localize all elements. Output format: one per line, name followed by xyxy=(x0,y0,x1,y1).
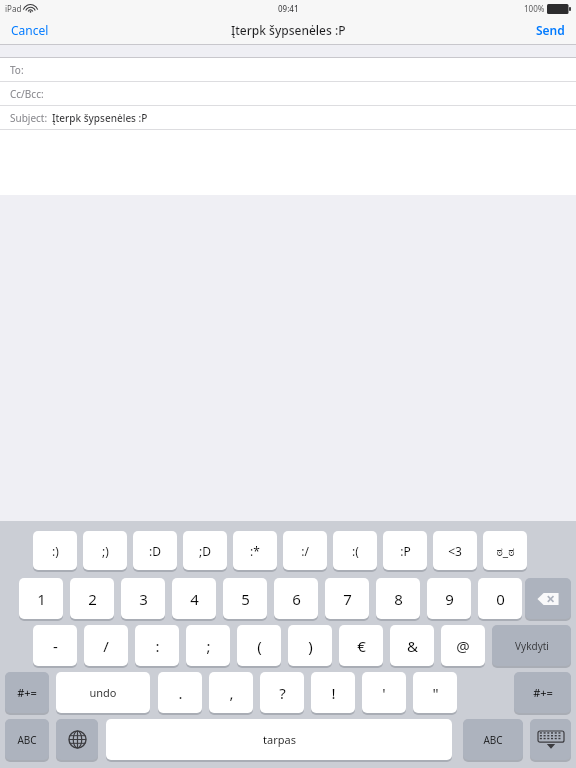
button[interactable]: ;D xyxy=(183,531,227,570)
button[interactable]: 0 xyxy=(478,578,522,619)
staticText: € xyxy=(357,636,366,656)
staticText: Cc/Bcc: xyxy=(10,87,44,101)
staticText: 2 xyxy=(88,589,97,609)
staticText: undo xyxy=(89,685,117,700)
button[interactable]: 6 xyxy=(274,578,318,619)
button[interactable]: :) xyxy=(33,531,77,570)
button[interactable]: <3 xyxy=(433,531,477,570)
button[interactable]: & xyxy=(390,625,434,666)
button[interactable]: € xyxy=(339,625,383,666)
staticText: @ xyxy=(456,636,470,656)
button[interactable]: 5 xyxy=(223,578,267,619)
button[interactable]: 4 xyxy=(172,578,216,619)
staticText: ;D xyxy=(199,543,211,559)
staticText: #+= xyxy=(533,685,553,700)
button[interactable]: 3 xyxy=(121,578,165,619)
button[interactable]: ;) xyxy=(83,531,127,570)
staticText: & xyxy=(407,636,418,656)
button[interactable]: ( xyxy=(237,625,281,666)
staticText: 7 xyxy=(343,589,352,609)
button[interactable]: :/ xyxy=(283,531,327,570)
button[interactable]: Next keyboard xyxy=(56,719,98,760)
button[interactable]: Backspace xyxy=(525,578,571,619)
staticText: 5 xyxy=(241,589,250,609)
staticText: / xyxy=(103,636,109,656)
staticText: 9 xyxy=(445,589,454,609)
staticText: :) xyxy=(52,543,59,559)
staticText: :( xyxy=(352,543,359,559)
staticText: :/ xyxy=(301,543,309,559)
staticText: :D xyxy=(149,543,161,559)
button[interactable]: ! xyxy=(311,672,355,713)
staticText: iPad xyxy=(5,3,22,14)
button[interactable]: :( xyxy=(333,531,377,570)
staticText: ABC xyxy=(17,733,37,747)
button[interactable]: #+= xyxy=(514,672,571,713)
staticText: ? xyxy=(279,683,286,703)
button[interactable]: Cancel xyxy=(6,19,54,41)
button[interactable]: " xyxy=(413,672,457,713)
button[interactable]: ; xyxy=(186,625,230,666)
staticText: ; xyxy=(206,636,211,656)
staticText: ( xyxy=(257,636,262,656)
button[interactable]: Send xyxy=(531,19,570,41)
button[interactable]: ABC xyxy=(5,719,49,760)
staticText: :* xyxy=(250,543,260,559)
button[interactable]: undo xyxy=(56,672,150,713)
staticText: 1 xyxy=(37,589,46,609)
button[interactable]: 7 xyxy=(325,578,369,619)
staticText: 0 xyxy=(496,589,505,609)
staticText: Subject: xyxy=(10,111,48,125)
staticText: , xyxy=(229,683,234,703)
staticText: 09:41 xyxy=(278,3,299,14)
staticText: ;) xyxy=(102,543,109,559)
staticText: :P xyxy=(400,543,411,559)
button[interactable]: Cc/Bcc: xyxy=(0,82,576,106)
staticText: Vykdyti xyxy=(515,639,549,653)
button[interactable]: . xyxy=(158,672,202,713)
staticText: ' xyxy=(382,683,386,703)
staticText: 3 xyxy=(139,589,148,609)
staticText: To: xyxy=(10,63,24,77)
staticText: Cancel xyxy=(11,22,49,38)
staticText: Įterpk šypsenėles :P xyxy=(231,22,346,38)
button[interactable]: Subject: xyxy=(0,106,576,130)
staticText: Įterpk šypsenėles :P xyxy=(52,111,148,125)
button[interactable]: ABC xyxy=(463,719,523,760)
staticText: Send xyxy=(536,22,565,38)
button[interactable]: :D xyxy=(133,531,177,570)
staticText: : xyxy=(155,636,160,656)
button[interactable]: Vykdyti xyxy=(492,625,571,666)
button[interactable]: @ xyxy=(441,625,485,666)
staticText: " xyxy=(432,683,439,703)
button[interactable]: :P xyxy=(383,531,427,570)
staticText: . xyxy=(178,683,183,703)
staticText: tarpas xyxy=(263,732,296,747)
button[interactable]: , xyxy=(209,672,253,713)
staticText: ಠ_ಠ xyxy=(496,543,515,559)
button[interactable]: ) xyxy=(288,625,332,666)
button[interactable]: - xyxy=(33,625,77,666)
button[interactable]: : xyxy=(135,625,179,666)
button[interactable]: / xyxy=(84,625,128,666)
staticText: #+= xyxy=(17,685,37,700)
staticText: 8 xyxy=(394,589,403,609)
button[interactable]: ಠ_ಠ xyxy=(483,531,527,570)
button[interactable]: 1 xyxy=(19,578,63,619)
staticText: ABC xyxy=(483,733,503,747)
button[interactable]: 2 xyxy=(70,578,114,619)
button[interactable]: ' xyxy=(362,672,406,713)
staticText: 100% xyxy=(524,3,545,14)
button[interactable]: tarpas xyxy=(106,719,452,760)
button[interactable]: Hide keyboard xyxy=(530,719,571,760)
staticText: 6 xyxy=(292,589,301,609)
button[interactable]: #+= xyxy=(5,672,49,713)
button[interactable]: 8 xyxy=(376,578,420,619)
staticText: <3 xyxy=(448,543,462,559)
button[interactable]: To: xyxy=(0,58,576,82)
button[interactable]: 9 xyxy=(427,578,471,619)
staticText: 4 xyxy=(190,589,199,609)
button[interactable]: ? xyxy=(260,672,304,713)
button[interactable]: :* xyxy=(233,531,277,570)
staticText: - xyxy=(53,636,58,656)
